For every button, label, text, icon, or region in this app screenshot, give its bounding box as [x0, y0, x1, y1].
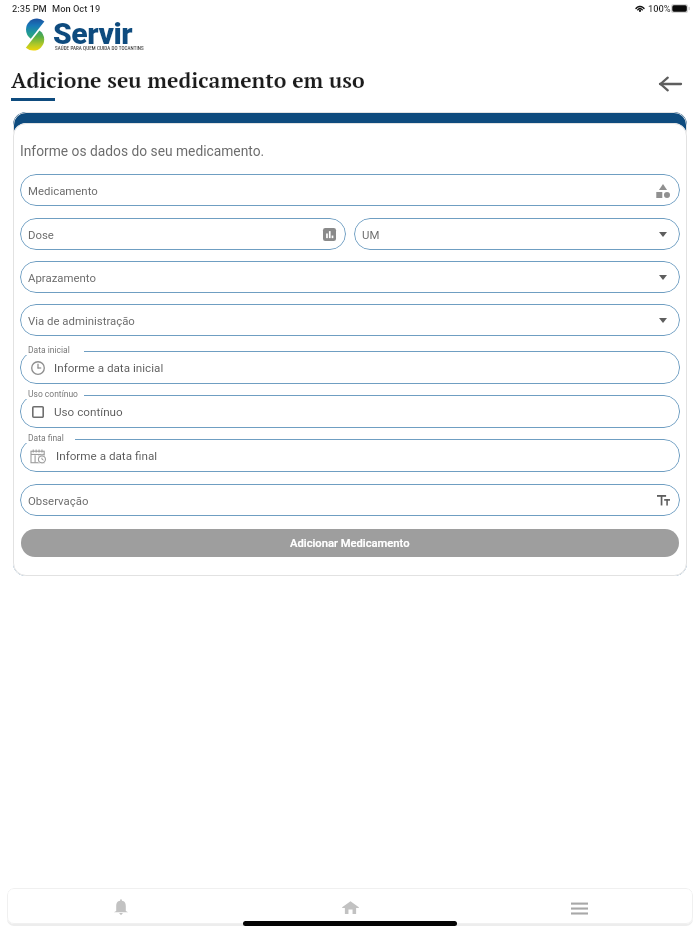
staticText: Aprazamento	[28, 271, 96, 284]
staticText: Via de administração	[28, 314, 135, 327]
button[interactable]: Observação	[20, 484, 680, 516]
button[interactable]: Medicamento	[20, 174, 680, 206]
staticText: Mon Oct 19	[52, 3, 101, 14]
button[interactable]	[20, 351, 680, 384]
staticText: Informe os dados do seu medicamento.	[20, 143, 265, 159]
staticText: Uso contínuo	[28, 389, 78, 399]
button[interactable]: Back	[648, 66, 692, 102]
staticText: 2:35 PM	[12, 3, 47, 14]
button[interactable]	[20, 439, 680, 472]
staticText: Informe a data inicial	[54, 361, 164, 375]
staticText: Servir	[53, 16, 133, 46]
button[interactable]: Via de administração	[20, 304, 680, 336]
staticText: Observação	[28, 494, 89, 507]
staticText: Informe a data final	[56, 449, 158, 463]
button[interactable]: UM	[354, 218, 680, 250]
staticText: Uso contínuo	[54, 405, 123, 419]
staticText: Data inicial	[28, 345, 70, 355]
staticText: 100%	[648, 3, 671, 14]
staticText: SAÚDE PARA QUEM CUIDA DO TOCANTINS	[55, 45, 144, 51]
button[interactable]: Dose	[20, 218, 346, 250]
button[interactable]: Aprazamento	[20, 261, 680, 293]
button[interactable]: Menu	[570, 899, 588, 915]
staticText: Adicione seu medicamento em uso	[11, 66, 365, 94]
staticText: Adicionar Medicamento	[290, 537, 410, 550]
button[interactable]: Notifications	[113, 899, 129, 916]
staticText: UM	[362, 228, 380, 241]
staticText: Data final	[28, 433, 64, 443]
staticText: Dose	[28, 228, 54, 241]
staticText: Medicamento	[28, 184, 98, 197]
button[interactable]	[20, 395, 680, 428]
button[interactable]: Adicionar Medicamento	[21, 529, 679, 557]
button[interactable]: Home	[341, 898, 359, 916]
